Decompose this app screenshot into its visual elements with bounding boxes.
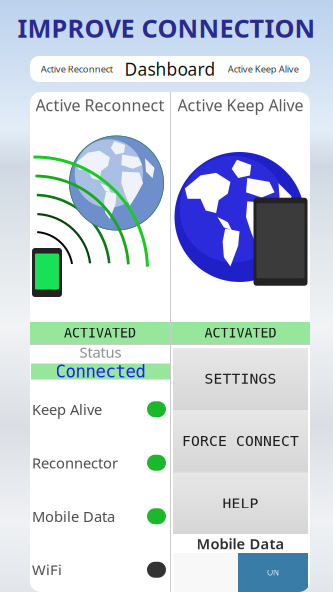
staticText: WiFi [32, 560, 62, 579]
staticText: Active Reconnect [35, 94, 164, 116]
button[interactable]: WiFi [31, 543, 170, 592]
staticText: ACTIVATED [204, 325, 276, 340]
button[interactable]: Active Keep Alive [217, 56, 310, 82]
button[interactable]: SETTINGS [173, 348, 308, 409]
button[interactable]: HELP [173, 473, 308, 534]
button[interactable]: FORCE CONNECT [173, 410, 308, 472]
staticText: Keep Alive [32, 399, 102, 419]
staticText: Status [79, 342, 121, 362]
button[interactable]: Keep Alive [31, 382, 170, 436]
staticText: HELP [222, 495, 258, 512]
staticText: Connected [55, 362, 145, 381]
button[interactable]: Dashboard [123, 56, 217, 82]
button[interactable]: Reconnector [31, 436, 170, 489]
staticText: SETTINGS [204, 370, 276, 387]
staticText: Mobile Data [32, 506, 115, 526]
button[interactable]: Active Reconnect [30, 56, 123, 82]
staticText: ACTIVATED [64, 325, 136, 340]
staticText: Reconnector [32, 453, 118, 472]
staticText: Active Keep Alive [177, 94, 303, 116]
staticText: Active Keep Alive [228, 63, 299, 75]
button[interactable]: Mobile Data [31, 489, 170, 543]
staticText: Dashboard [124, 57, 215, 80]
staticText: Active Reconnect [41, 63, 113, 75]
staticText: FORCE CONNECT [182, 433, 299, 449]
button[interactable]: ON [173, 553, 308, 592]
staticText: Mobile Data [196, 534, 284, 553]
staticText: IMPROVE CONNECTION [17, 11, 315, 45]
staticText: ON [267, 567, 279, 578]
